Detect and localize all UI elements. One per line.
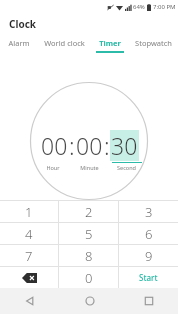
staticText: : bbox=[69, 130, 75, 161]
staticText: 64% bbox=[133, 3, 145, 11]
button[interactable]: 00 bbox=[75, 130, 104, 161]
button[interactable]: World clock bbox=[37, 34, 91, 56]
button[interactable]: 2 bbox=[59, 201, 118, 222]
button[interactable]: 5 bbox=[59, 223, 118, 244]
staticText: 5 bbox=[85, 225, 93, 243]
staticText: Timer bbox=[99, 38, 121, 48]
staticText: 8 bbox=[85, 247, 93, 265]
button[interactable]: Backspace bbox=[0, 267, 58, 288]
staticText: : bbox=[104, 130, 110, 161]
staticText: 9 bbox=[145, 247, 153, 265]
button[interactable]: 1 bbox=[0, 201, 58, 222]
button[interactable]: 4 bbox=[0, 223, 58, 244]
staticText: 00 bbox=[41, 130, 68, 161]
button[interactable]: 0 bbox=[59, 267, 118, 288]
staticText: 4 bbox=[25, 225, 33, 243]
staticText: 7:00 PM bbox=[153, 3, 176, 11]
staticText: Start bbox=[139, 272, 158, 283]
button[interactable]: 3 bbox=[119, 201, 178, 222]
staticText: 1 bbox=[25, 203, 33, 221]
button[interactable]: Timer bbox=[91, 34, 128, 56]
staticText: Minute bbox=[80, 164, 99, 171]
staticText: Hour bbox=[46, 164, 60, 171]
button[interactable]: Recent apps bbox=[119, 288, 178, 314]
button[interactable]: 00 bbox=[40, 130, 69, 161]
staticText: World clock bbox=[44, 38, 85, 48]
button[interactable]: Alarm bbox=[0, 34, 37, 56]
staticText: 0 bbox=[85, 269, 93, 287]
staticText: Second bbox=[117, 164, 136, 171]
button[interactable]: 8 bbox=[59, 245, 118, 266]
staticText: Stopwatch bbox=[135, 38, 172, 48]
button[interactable]: Back bbox=[0, 288, 60, 314]
button[interactable]: 6 bbox=[119, 223, 178, 244]
button[interactable]: 7 bbox=[0, 245, 58, 266]
staticText: 00 bbox=[76, 130, 103, 161]
button[interactable]: 30 bbox=[110, 130, 139, 161]
staticText: 3 bbox=[145, 203, 153, 221]
staticText: 30 bbox=[111, 130, 138, 161]
button[interactable]: Start bbox=[119, 267, 178, 288]
staticText: 2 bbox=[85, 203, 93, 221]
staticText: 6 bbox=[145, 225, 153, 243]
staticText: Alarm bbox=[8, 38, 30, 48]
staticText: 7 bbox=[25, 247, 33, 265]
button[interactable]: Stopwatch bbox=[128, 34, 178, 56]
staticText: Clock bbox=[9, 17, 37, 31]
button[interactable]: 9 bbox=[119, 245, 178, 266]
button[interactable]: Home bbox=[60, 288, 119, 314]
